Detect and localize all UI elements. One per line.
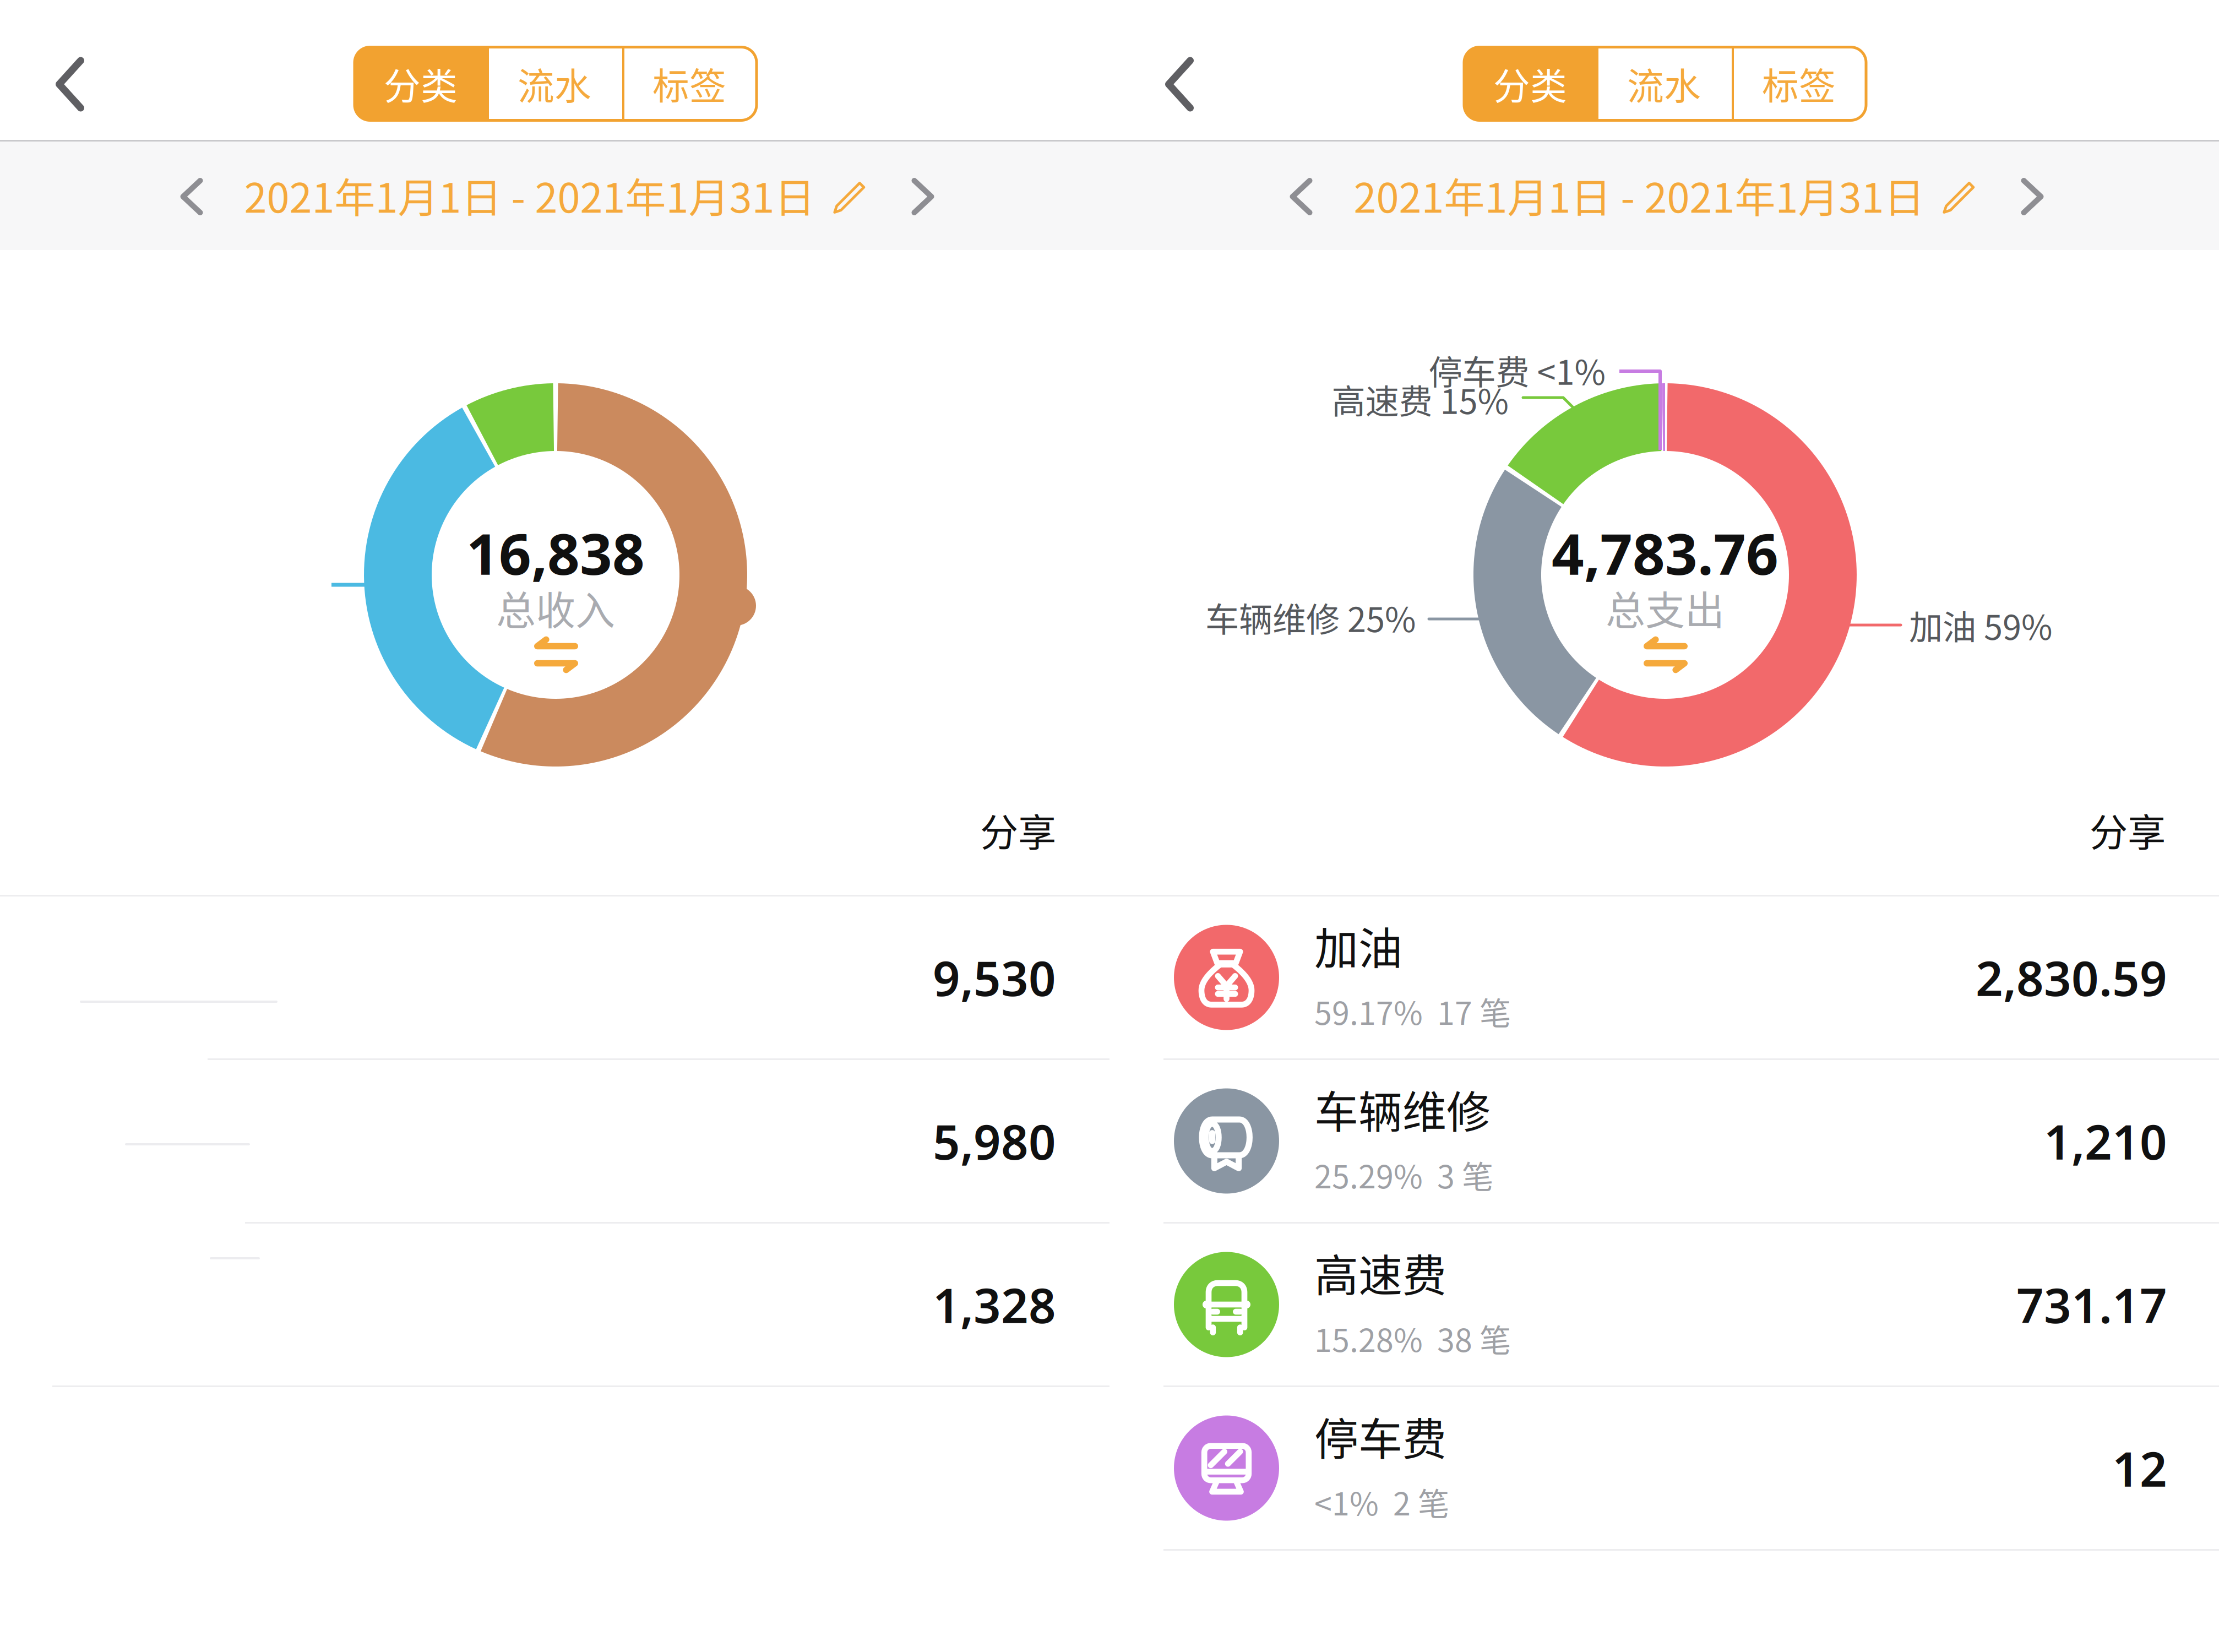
- staticText: 加油: [1314, 913, 1402, 977]
- staticText: 分类: [1493, 57, 1567, 110]
- button[interactable]: 高速费: [1109, 1224, 2219, 1385]
- staticText: 总收入: [496, 579, 615, 636]
- button[interactable]: Back: [1142, 34, 1217, 135]
- button[interactable]: Back: [32, 34, 107, 135]
- staticText: 9,530: [933, 946, 1056, 1009]
- staticText: 标签: [652, 57, 726, 110]
- staticText: 59.17% 17 笔: [1314, 988, 1511, 1034]
- button[interactable]: 标签: [622, 47, 757, 120]
- staticText: 分享: [980, 802, 1056, 857]
- staticText: 4,783.76: [1552, 515, 1779, 590]
- staticText: 加油 59%: [1909, 601, 2052, 649]
- button[interactable]: Share: [2077, 790, 2178, 870]
- staticText: 2021年1月1日 - 2021年1月31日: [244, 165, 815, 224]
- button[interactable]: 车辆维修: [1109, 1060, 2219, 1222]
- staticText: <1% 2 笔: [1314, 1479, 1449, 1524]
- staticText: 流水: [518, 57, 591, 110]
- staticText: 12: [2112, 1436, 2167, 1500]
- staticText: 停车费: [1314, 1404, 1446, 1468]
- staticText: 标签: [1762, 57, 1836, 110]
- staticText: 车辆维修: [1314, 1077, 1491, 1141]
- button[interactable]: 1,328: [0, 1224, 1109, 1385]
- staticText: 流水: [1627, 57, 1701, 110]
- staticText: 停车费 <1%: [1429, 346, 1605, 394]
- staticText: 车辆维修 25%: [1205, 593, 1416, 642]
- button[interactable]: 加油: [1109, 896, 2219, 1058]
- button[interactable]: Next period: [2002, 159, 2062, 234]
- button[interactable]: 标签: [1732, 47, 1866, 120]
- button[interactable]: Share: [968, 790, 1068, 870]
- button[interactable]: 停车费: [1109, 1387, 2219, 1549]
- staticText: 高速费: [1314, 1240, 1446, 1304]
- staticText: 2,830.59: [1976, 946, 2167, 1009]
- staticText: 5,980: [933, 1109, 1056, 1173]
- staticText: 16,838: [466, 515, 645, 590]
- button[interactable]: 2021年1月1日 - 2021年1月31日: [231, 156, 828, 234]
- button[interactable]: 2021年1月1日 - 2021年1月31日: [1340, 156, 1938, 234]
- staticText: 1,210: [2044, 1109, 2167, 1173]
- button[interactable]: Edit date range: [818, 166, 880, 228]
- button[interactable]: Previous period: [162, 159, 222, 234]
- button[interactable]: 分类: [355, 47, 487, 120]
- button[interactable]: 分类: [1464, 47, 1596, 120]
- staticText: 高速费 15%: [1332, 375, 1508, 424]
- staticText: 25.29% 3 笔: [1314, 1152, 1493, 1197]
- staticText: 分类: [384, 57, 458, 110]
- staticText: 1,328: [933, 1273, 1056, 1336]
- staticText: 15.28% 38 笔: [1314, 1315, 1511, 1361]
- button[interactable]: Next period: [893, 159, 953, 234]
- staticText: 2021年1月1日 - 2021年1月31日: [1354, 165, 1925, 224]
- staticText: 分享: [2090, 802, 2166, 857]
- staticText: 731.17: [2016, 1273, 2167, 1336]
- button[interactable]: 流水: [1596, 47, 1732, 120]
- button[interactable]: 流水: [487, 47, 622, 120]
- staticText: 总支出: [1606, 579, 1725, 636]
- button[interactable]: 9,530: [0, 896, 1109, 1058]
- button[interactable]: Edit date range: [1928, 166, 1989, 228]
- button[interactable]: 5,980: [0, 1060, 1109, 1222]
- button[interactable]: Previous period: [1271, 159, 1331, 234]
